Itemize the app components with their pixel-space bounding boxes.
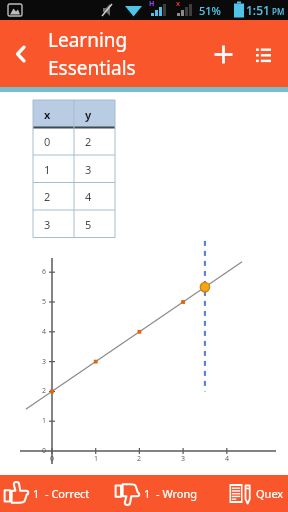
staticText: 5	[85, 217, 92, 232]
staticText: 4	[42, 327, 47, 337]
staticText: 2	[137, 454, 142, 464]
staticText: 3	[181, 454, 186, 464]
button[interactable]: Back	[0, 33, 42, 75]
staticText: 1 - Correct	[33, 486, 90, 501]
button[interactable]: Quex	[228, 475, 288, 512]
staticText: 2	[44, 189, 51, 204]
staticText: x	[176, 0, 181, 9]
staticText: 1	[42, 416, 47, 426]
staticText: Essentials	[48, 55, 136, 81]
staticText: 3	[42, 357, 47, 367]
staticText: 2	[42, 386, 47, 396]
staticText: 51%	[199, 3, 221, 18]
button[interactable]: 1 - Correct	[0, 475, 114, 512]
staticText: 2	[85, 134, 92, 149]
staticText: 1	[94, 454, 99, 464]
staticText: Learning	[48, 27, 128, 53]
staticText: 0	[42, 446, 47, 456]
staticText: 3	[44, 217, 51, 232]
staticText: H	[149, 0, 155, 9]
button[interactable]: 1 - Wrong	[114, 475, 228, 512]
staticText: 1	[44, 162, 51, 177]
button[interactable]: Add	[203, 34, 243, 74]
staticText: 4	[85, 189, 92, 204]
staticText: 3	[85, 162, 92, 177]
staticText: 5	[42, 297, 47, 307]
staticText: 0	[50, 454, 55, 464]
staticText: 1:51	[246, 2, 270, 18]
staticText: x	[44, 107, 51, 122]
staticText: PM	[272, 6, 285, 17]
staticText: 6	[42, 267, 47, 277]
button[interactable]: List view	[243, 34, 283, 74]
staticText: y	[85, 107, 92, 122]
staticText: 4	[225, 454, 230, 464]
staticText: 0	[44, 134, 51, 149]
staticText: Quex	[256, 486, 284, 501]
staticText: 1 - Wrong	[144, 486, 198, 501]
